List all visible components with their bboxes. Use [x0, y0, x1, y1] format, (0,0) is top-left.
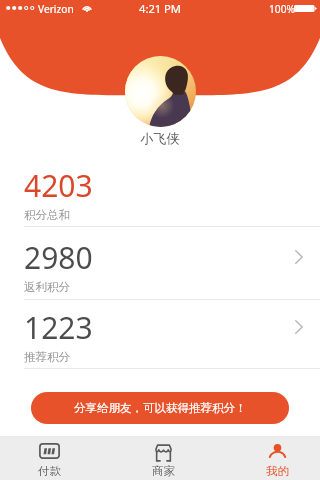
button[interactable]: 我的 [224, 436, 320, 480]
staticText: 2980 [24, 237, 93, 278]
staticText: 商家 [152, 464, 175, 478]
staticText: 1223 [24, 307, 93, 348]
button[interactable]: 1223 [0, 307, 320, 369]
button[interactable]: 4203 [0, 165, 320, 227]
button[interactable]: 商家 [110, 436, 216, 480]
staticText: 4:21 PM [0, 1, 320, 16]
staticText: 我的 [266, 464, 289, 478]
button[interactable]: 2980 [0, 237, 320, 299]
staticText: 付款 [38, 464, 61, 478]
button[interactable]: 付款 [0, 436, 102, 480]
staticText: 4203 [24, 165, 93, 206]
staticText: 100% [269, 2, 295, 16]
staticText: 分享给朋友，可以获得推荐积分！ [74, 401, 247, 415]
staticText: 返利积分 [24, 280, 70, 294]
staticText: 推荐积分 [24, 350, 70, 364]
staticText: 积分总和 [24, 208, 70, 222]
button[interactable]: 分享给朋友，可以获得推荐积分！ [31, 392, 289, 424]
staticText: Verizon [38, 2, 74, 16]
staticText: 小飞侠 [0, 130, 320, 146]
